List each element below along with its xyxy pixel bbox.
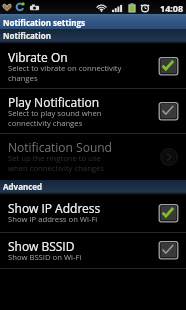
staticText: Notification settings <box>3 17 85 28</box>
button[interactable]: Show IP Address <box>0 195 186 232</box>
button[interactable]: Toggle setting <box>158 102 180 121</box>
button[interactable]: Toggle setting <box>158 204 180 223</box>
staticText: Select to vibrate on connectivity change… <box>8 63 122 83</box>
staticText: Show IP Address <box>8 200 101 216</box>
button[interactable]: Notification Sound <box>0 134 186 180</box>
staticText: Show IP address on Wi-Fi <box>8 214 98 224</box>
button[interactable]: Choose notification sound <box>158 146 180 168</box>
staticText: Vibrate On Notification <box>8 49 122 65</box>
staticText: 14:08 <box>160 2 184 14</box>
button[interactable]: Notification settings <box>0 14 186 29</box>
button[interactable]: Vibrate On Notification <box>0 44 186 88</box>
staticText: Play Notification Sound <box>8 94 122 110</box>
button[interactable]: Toggle setting <box>158 57 180 76</box>
button[interactable]: Show BSSID <box>0 233 186 268</box>
staticText: Advanced <box>3 181 43 192</box>
staticText: Notification <box>3 30 51 41</box>
staticText: Set up the ringtone to use when connecti… <box>8 153 122 173</box>
button[interactable]: Play Notification Sound <box>0 89 186 133</box>
staticText: Show BSSID <box>8 238 75 254</box>
staticText: Show BSSID on Wi-Fi <box>8 252 82 262</box>
button[interactable]: Toggle setting <box>158 241 180 260</box>
staticText: Notification Sound <box>8 139 112 155</box>
staticText: Select to play sound when connectivity c… <box>8 108 122 128</box>
